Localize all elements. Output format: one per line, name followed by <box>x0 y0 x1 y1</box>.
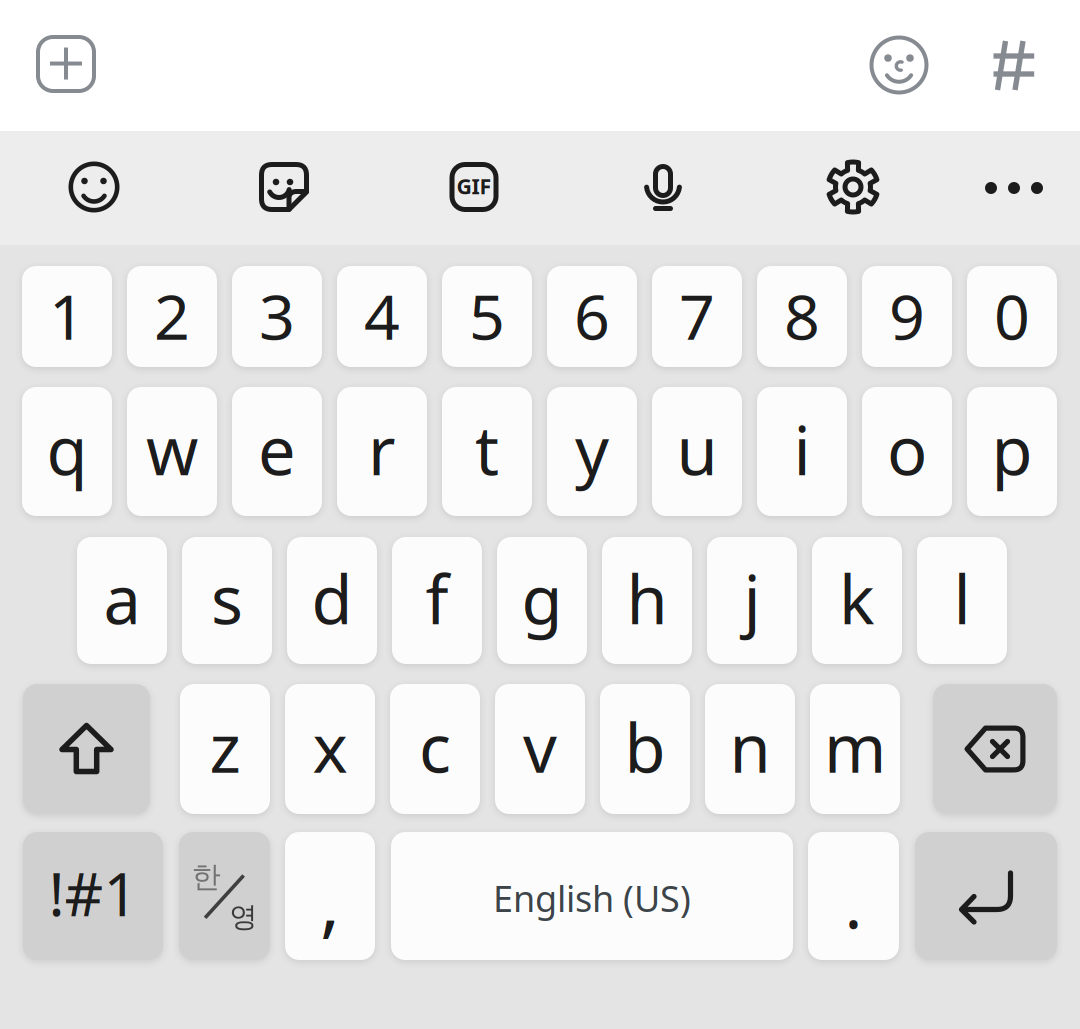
button[interactable]: h <box>602 537 692 664</box>
staticText: n <box>729 703 770 791</box>
button[interactable]: f <box>392 537 482 664</box>
button[interactable]: p <box>967 387 1057 516</box>
button[interactable]: c <box>390 684 480 814</box>
staticText: r <box>368 405 396 494</box>
staticText: z <box>209 703 240 791</box>
staticText: y <box>575 405 609 494</box>
staticText: w <box>146 405 198 494</box>
staticText: English (US) <box>493 874 691 922</box>
button[interactable]: k <box>812 537 902 664</box>
staticText: g <box>521 554 562 643</box>
staticText: f <box>425 554 448 643</box>
button[interactable]: g <box>497 537 587 664</box>
staticText: 8 <box>784 274 820 357</box>
staticText: p <box>991 405 1032 494</box>
button[interactable]: Voice input <box>628 152 698 222</box>
button[interactable]: 7 <box>652 266 742 367</box>
button[interactable]: Space, English (US) <box>391 832 793 960</box>
button[interactable]: Hashtag <box>967 26 1043 102</box>
button[interactable]: b <box>600 684 690 814</box>
button[interactable]: x <box>285 684 375 814</box>
button[interactable]: 5 <box>442 266 532 367</box>
button[interactable]: o <box>862 387 952 516</box>
staticText: , <box>320 850 340 950</box>
button[interactable]: . <box>808 832 899 960</box>
staticText: GIF <box>456 172 491 200</box>
button[interactable]: Stickers <box>249 152 319 222</box>
staticText: c <box>419 703 451 791</box>
button[interactable]: s <box>182 537 272 664</box>
staticText: h <box>626 554 667 643</box>
staticText: s <box>211 554 243 643</box>
staticText: u <box>676 405 717 494</box>
staticText: e <box>258 405 296 494</box>
button[interactable]: Backspace <box>933 684 1057 814</box>
button[interactable]: Change language <box>179 832 270 960</box>
staticText: 영 <box>229 900 257 934</box>
button[interactable]: 1 <box>22 266 112 367</box>
button[interactable]: 9 <box>862 266 952 367</box>
button[interactable]: j <box>707 537 797 664</box>
button[interactable]: GIF <box>439 152 509 222</box>
staticText: q <box>46 405 87 494</box>
button[interactable]: m <box>810 684 900 814</box>
button[interactable]: d <box>287 537 377 664</box>
button[interactable]: 8 <box>757 266 847 367</box>
staticText: o <box>887 405 927 494</box>
button[interactable]: a <box>77 537 167 664</box>
staticText: v <box>523 703 557 791</box>
staticText: x <box>312 703 347 791</box>
staticText: 6 <box>574 274 610 357</box>
button[interactable]: Shift <box>23 684 150 814</box>
staticText: 한 <box>191 859 220 895</box>
button[interactable]: t <box>442 387 532 516</box>
staticText: . <box>844 859 862 947</box>
button[interactable]: Emoji <box>59 152 129 222</box>
button[interactable]: q <box>22 387 112 516</box>
button[interactable]: n <box>705 684 795 814</box>
button[interactable]: More options <box>979 153 1049 223</box>
staticText: m <box>824 703 886 791</box>
button[interactable]: r <box>337 387 427 516</box>
staticText: d <box>311 554 352 643</box>
button[interactable]: u <box>652 387 742 516</box>
button[interactable]: Symbols <box>23 832 163 960</box>
button[interactable]: 0 <box>967 266 1057 367</box>
staticText: !#1 <box>48 853 137 933</box>
staticText: l <box>953 554 970 643</box>
staticText: 0 <box>994 274 1030 357</box>
button[interactable]: i <box>757 387 847 516</box>
staticText: 4 <box>364 274 400 357</box>
button[interactable]: Add content <box>28 26 104 102</box>
button[interactable]: w <box>127 387 217 516</box>
button[interactable]: z <box>180 684 270 814</box>
staticText: j <box>743 554 760 643</box>
staticText: 2 <box>154 274 190 357</box>
button[interactable]: 4 <box>337 266 427 367</box>
staticText: b <box>624 703 665 791</box>
button[interactable]: Emoji <box>861 27 937 103</box>
button[interactable]: 6 <box>547 266 637 367</box>
staticText: 5 <box>469 274 505 357</box>
staticText: 9 <box>889 274 925 357</box>
staticText: 3 <box>259 274 295 357</box>
button[interactable]: l <box>917 537 1007 664</box>
button[interactable]: v <box>495 684 585 814</box>
button[interactable]: y <box>547 387 637 516</box>
button[interactable]: Enter <box>915 832 1057 960</box>
button[interactable]: 2 <box>127 266 217 367</box>
staticText: t <box>475 405 499 494</box>
staticText: 7 <box>679 274 715 357</box>
button[interactable]: Keyboard settings <box>818 152 888 222</box>
staticText: i <box>793 405 810 494</box>
button[interactable]: , <box>285 832 375 960</box>
button[interactable]: 3 <box>232 266 322 367</box>
staticText: a <box>103 554 140 643</box>
staticText: 1 <box>49 274 85 357</box>
staticText: k <box>839 554 875 643</box>
button[interactable]: e <box>232 387 322 516</box>
